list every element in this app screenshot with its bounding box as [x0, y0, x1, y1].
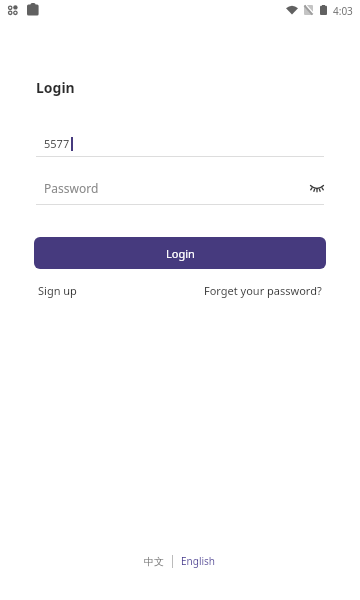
staticText: Password	[44, 180, 310, 196]
staticText: 4:03	[333, 4, 353, 16]
button[interactable]: 中文	[144, 555, 164, 568]
button[interactable]: Login	[34, 237, 326, 269]
staticText: Login	[36, 78, 75, 97]
button[interactable]: Sign up	[38, 283, 77, 298]
staticText: 5577	[44, 136, 70, 151]
button[interactable]: Forget your password?	[204, 283, 322, 298]
button[interactable]: English	[181, 554, 216, 568]
staticText: Login	[166, 246, 195, 261]
button[interactable]	[310, 184, 324, 193]
